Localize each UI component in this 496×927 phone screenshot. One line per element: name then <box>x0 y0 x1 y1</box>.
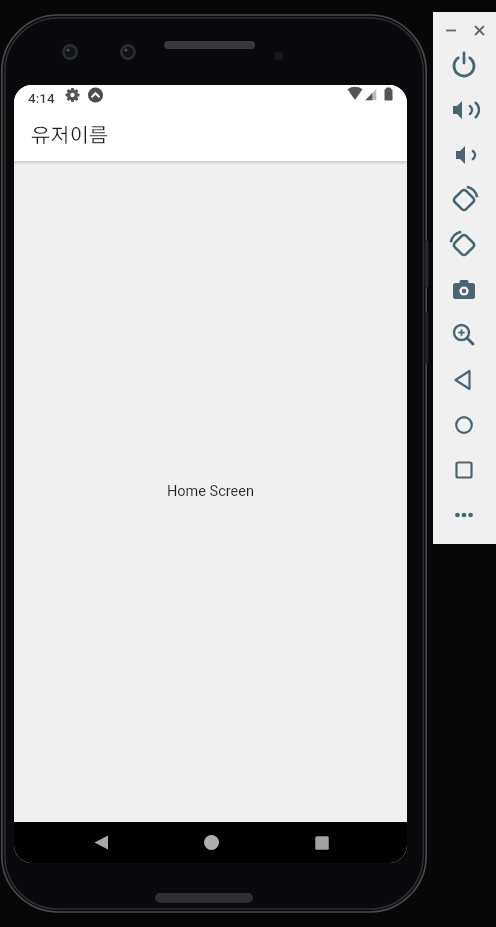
staticText: Home Screen <box>167 483 254 500</box>
button[interactable] <box>442 88 486 132</box>
button[interactable] <box>79 823 123 862</box>
staticText: 유저이름 <box>31 126 108 146</box>
button[interactable] <box>470 21 488 39</box>
button[interactable] <box>442 493 486 537</box>
button[interactable] <box>442 133 486 177</box>
button[interactable] <box>442 268 486 312</box>
button[interactable] <box>442 223 486 267</box>
button[interactable] <box>442 178 486 222</box>
button[interactable] <box>442 448 486 492</box>
button[interactable]: 유저이름 <box>14 110 407 161</box>
button[interactable] <box>189 823 233 862</box>
button[interactable] <box>300 823 344 862</box>
staticText: 4:14 <box>28 90 55 106</box>
button[interactable] <box>442 313 486 357</box>
button[interactable] <box>442 358 486 402</box>
button[interactable] <box>442 43 486 87</box>
button[interactable] <box>442 21 460 39</box>
button[interactable] <box>442 403 486 447</box>
